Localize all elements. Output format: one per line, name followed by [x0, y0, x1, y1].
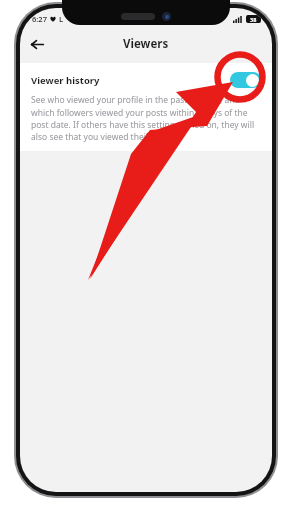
button[interactable]: Viewer history: [20, 63, 272, 151]
staticText: L: [59, 14, 64, 24]
button[interactable]: Viewer history toggle, on: [230, 72, 261, 88]
staticText: 6:27: [32, 14, 47, 24]
staticText: Viewer history: [31, 74, 230, 87]
staticText: 38: [250, 16, 257, 23]
staticText: Viewers: [123, 36, 169, 52]
button[interactable]: Back: [24, 31, 50, 57]
staticText: See who viewed your profile in the past …: [31, 94, 261, 142]
